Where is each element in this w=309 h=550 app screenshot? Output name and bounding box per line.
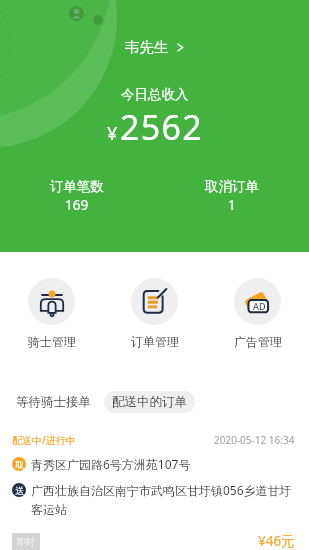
staticText: 取	[15, 459, 24, 470]
staticText: 骑士管理	[28, 334, 76, 349]
staticText: 169	[65, 196, 89, 214]
button[interactable]: 等待骑士接单	[16, 389, 91, 415]
staticText: ¥	[107, 121, 118, 146]
staticText: 今日总收入	[121, 86, 189, 103]
other: Profile	[69, 6, 84, 21]
staticText: 青秀区广园路6号方洲苑107号	[31, 456, 191, 472]
staticText: 2562	[120, 104, 203, 150]
staticText: 订单管理	[131, 334, 179, 349]
button[interactable]: AD	[206, 278, 309, 349]
button[interactable]: 韦先生	[119, 36, 191, 58]
staticText: 送	[15, 485, 24, 496]
button[interactable]: 订单管理	[103, 278, 206, 349]
staticText: 取消订单	[205, 178, 259, 195]
staticText: 等待骑士接单	[16, 394, 91, 410]
staticText: 配送中/进行中	[12, 433, 76, 447]
staticText: ¥46元	[258, 532, 295, 550]
button[interactable]: 配送中/进行中	[0, 429, 309, 550]
button[interactable]: 配送中的订单	[104, 391, 195, 413]
staticText: 即时	[17, 536, 35, 547]
staticText: 订单笔数	[50, 178, 104, 195]
staticText: 韦先生	[125, 38, 169, 56]
staticText: 广告管理	[234, 334, 282, 349]
staticText: 广西壮族自治区南宁市武鸣区甘圩镇056乡道甘圩客运站	[31, 482, 295, 518]
staticText: 配送中的订单	[112, 394, 187, 410]
button[interactable]: 骑士管理	[0, 278, 103, 349]
staticText: 1	[228, 196, 236, 214]
staticText: AD	[253, 300, 266, 312]
staticText: 2020-05-12 16:34	[214, 433, 295, 447]
